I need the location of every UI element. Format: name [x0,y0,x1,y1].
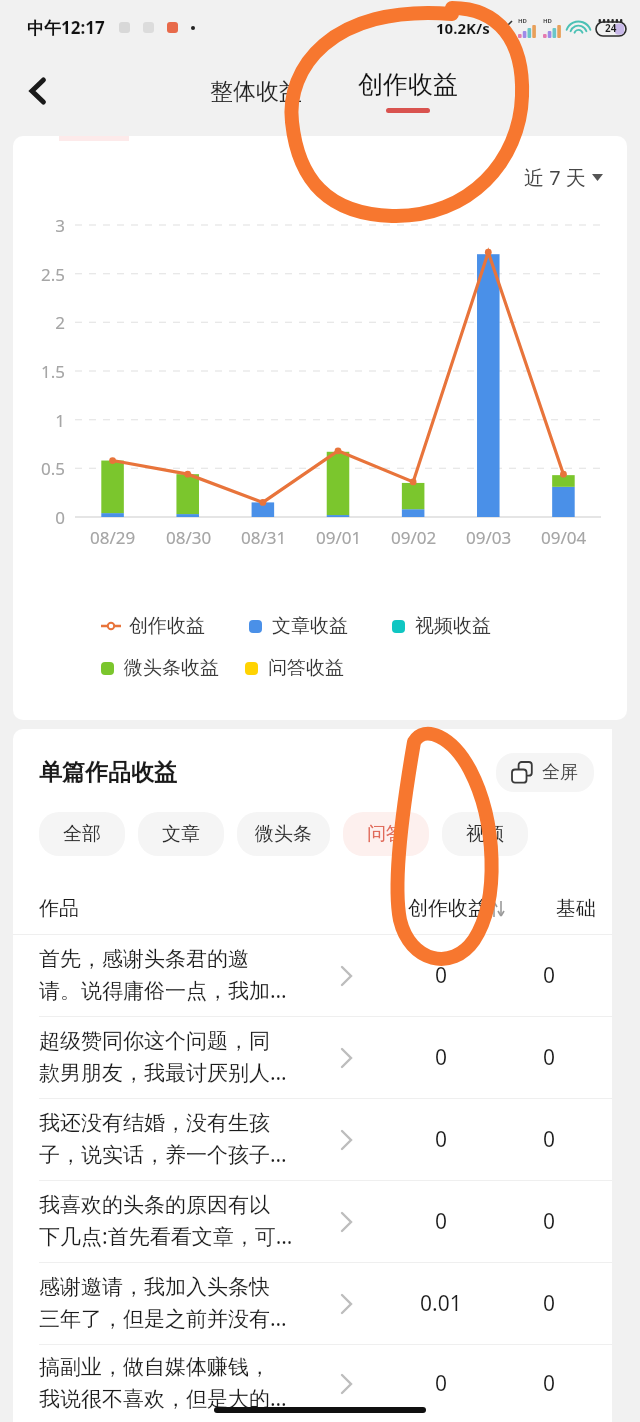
staticText: 0 [435,1125,448,1154]
staticText: 0 [543,1125,556,1154]
staticText: 0 [543,1369,556,1398]
staticText: HD [543,17,552,25]
staticText: 0 [435,1043,448,1072]
staticText: 0.01 [420,1289,462,1318]
staticText: 感谢邀请，我加入头条快 [39,1274,270,1300]
staticText: 我喜欢的头条的原因有以 [39,1192,270,1218]
staticText: 微头条收益 [124,656,219,680]
button[interactable]: 创作收益 [408,896,504,921]
staticText: 下几点:首先看看文章，可… [39,1222,293,1251]
button[interactable]: 近 7 天 [518,158,609,197]
staticText: 款男朋友，我最讨厌别人… [39,1058,287,1087]
staticText: 近 7 天 [524,164,586,191]
staticText: 2 [13,311,65,333]
staticText: 09/02 [391,526,437,549]
staticText: 问答收益 [268,656,344,680]
staticText: 超级赞同你这个问题，同 [39,1028,270,1054]
staticText: 整体收益 [210,77,302,106]
staticText: 0 [435,1369,448,1398]
staticText: 3 [13,214,65,236]
staticText: 请。说得庸俗一点，我加… [39,976,287,1005]
staticText: 0.5 [13,457,65,479]
staticText: 视频 [466,822,504,846]
button[interactable]: 搞副业，做自媒体赚钱， [13,1345,612,1422]
staticText: 三年了，但是之前并没有… [39,1304,287,1333]
staticText: 首先，感谢头条君的邀 [39,946,249,972]
staticText: 文章收益 [272,614,348,638]
staticText: HD [518,17,527,25]
button[interactable]: 微头条 [237,812,330,856]
staticText: 创作收益 [408,896,488,921]
button[interactable]: 创作收益 [344,65,472,117]
button[interactable]: 全屏 [496,753,594,792]
staticText: 子，说实话，养一个孩子… [39,1140,287,1169]
staticText: 搞副业，做自媒体赚钱， [39,1354,270,1380]
staticText: 全部 [63,822,101,846]
staticText: 0 [13,506,65,528]
staticText: 08/29 [90,526,136,549]
staticText: 09/03 [466,526,512,549]
button[interactable]: Back [16,68,62,114]
button[interactable]: 我还没有结婚，没有生孩 [13,1099,612,1180]
button[interactable]: 整体收益 [196,69,316,114]
button[interactable]: 问答 [343,812,429,856]
staticText: 单篇作品收益 [39,758,177,787]
staticText: 作品 [39,896,79,921]
staticText: 微头条 [255,822,312,846]
button[interactable]: 我喜欢的头条的原因有以 [13,1181,612,1262]
staticText: 24 [605,21,617,35]
staticText: 我说很不喜欢，但是大的… [39,1384,287,1413]
staticText: 1.5 [13,360,65,382]
staticText: 中午12:17 [27,16,105,39]
button[interactable]: 全部 [39,812,125,856]
staticText: 0 [543,1043,556,1072]
staticText: 创作收益 [358,69,458,100]
staticText: 视频收益 [415,614,491,638]
staticText: 基础收 [556,896,612,921]
button[interactable]: 文章 [138,812,224,856]
staticText: 09/04 [541,526,587,549]
staticText: 10.2K/s [436,18,490,38]
button[interactable]: 视频 [442,812,528,856]
button[interactable]: 超级赞同你这个问题，同 [13,1017,612,1098]
staticText: 问答 [367,822,405,846]
button[interactable]: 感谢邀请，我加入头条快 [13,1263,612,1344]
staticText: 文章 [162,822,200,846]
staticText: 2.5 [13,263,65,285]
staticText: 09/01 [316,526,362,549]
button[interactable]: 首先，感谢头条君的邀 [13,935,612,1016]
staticText: 0 [543,1289,556,1318]
staticText: 0 [543,1207,556,1236]
staticText: 0 [435,961,448,990]
staticText: 1 [13,409,65,431]
staticText: 08/30 [166,526,212,549]
staticText: 0 [543,961,556,990]
staticText: 08/31 [241,526,287,549]
staticText: 0 [435,1207,448,1236]
staticText: 我还没有结婚，没有生孩 [39,1110,270,1136]
staticText: 创作收益 [129,614,205,638]
staticText: 全屏 [542,761,578,784]
